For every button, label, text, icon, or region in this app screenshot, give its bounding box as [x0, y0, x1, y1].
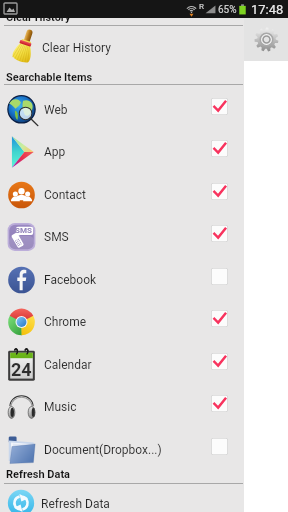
button[interactable]: Web [0, 88, 244, 131]
staticText: Refresh Data [41, 497, 110, 511]
staticText: Searchable Items [6, 71, 93, 84]
button[interactable]: Settings [244, 18, 288, 61]
staticText: App [44, 145, 66, 159]
staticText: 24 [11, 359, 32, 380]
button[interactable]: Refresh Data [0, 484, 244, 512]
staticText: Calendar [44, 358, 92, 372]
button[interactable]: Clear History [0, 27, 244, 67]
staticText: Chrome [44, 315, 87, 329]
staticText: 65% [218, 4, 237, 16]
staticText: Clear History [42, 41, 111, 55]
staticText: Clear History [6, 11, 71, 24]
button[interactable]: Document(Dropbox...) [0, 428, 244, 471]
button[interactable]: Checked [211, 310, 228, 327]
button[interactable]: Checked [211, 225, 228, 242]
button[interactable]: Not checked [211, 268, 228, 285]
staticText: Contact [44, 188, 86, 202]
staticText: 17:48 [251, 2, 284, 17]
staticText: SMS [44, 230, 69, 244]
button[interactable]: Checked [211, 183, 228, 200]
button[interactable]: Not checked [211, 438, 228, 455]
button[interactable]: SMS [0, 215, 244, 258]
button[interactable]: Chrome [0, 300, 244, 343]
button[interactable]: Checked [211, 395, 228, 412]
button[interactable]: 24 [0, 343, 244, 386]
staticText: Facebook [44, 273, 97, 287]
staticText: R [199, 2, 204, 11]
button[interactable]: Music [0, 385, 244, 428]
staticText: Web [44, 103, 68, 117]
button[interactable]: Checked [211, 353, 228, 370]
staticText: Refresh Data [6, 468, 70, 481]
button[interactable]: Facebook [0, 258, 244, 301]
staticText: Music [44, 400, 77, 414]
button[interactable]: Checked [211, 140, 228, 157]
button[interactable]: App [0, 130, 244, 173]
button[interactable]: Contact [0, 173, 244, 216]
staticText: Document(Dropbox...) [44, 443, 162, 457]
button[interactable]: Checked [211, 98, 228, 115]
staticText: SMS [15, 226, 32, 235]
